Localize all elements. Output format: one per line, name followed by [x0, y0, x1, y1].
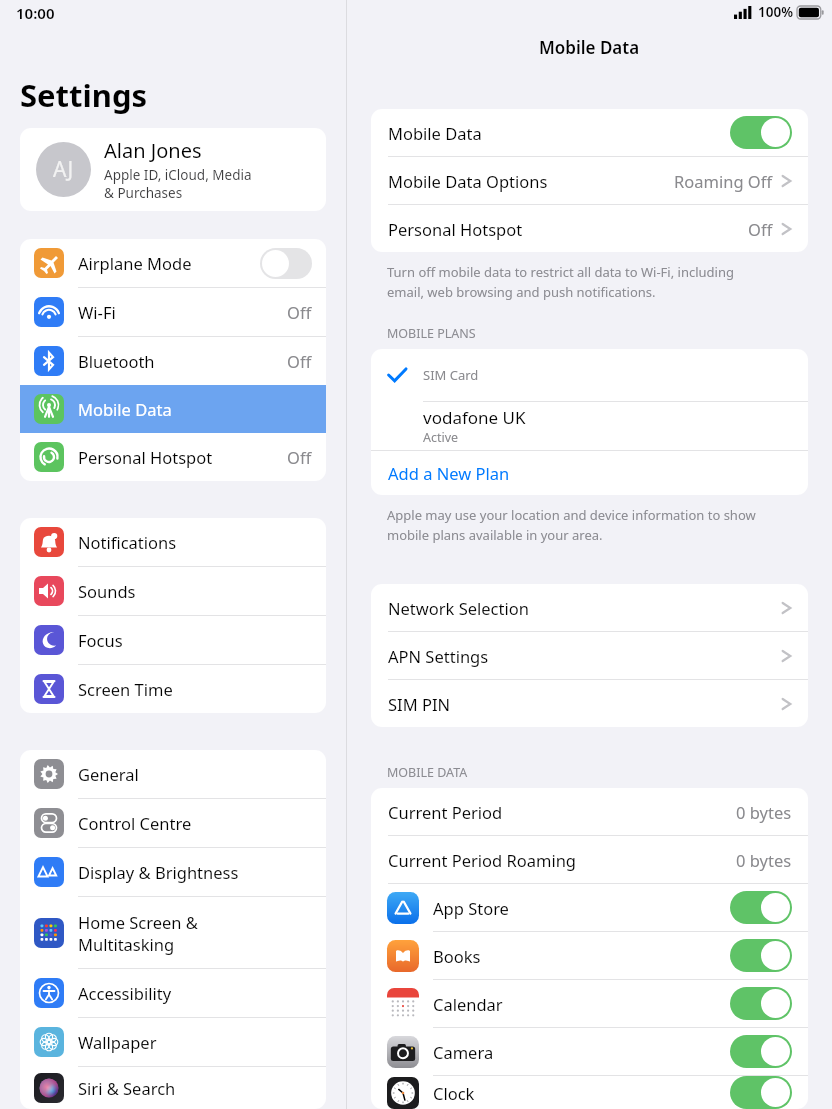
staticText: Apple may use your location and device i… [387, 506, 756, 524]
staticText: 0 bytes [736, 849, 792, 871]
staticText: Add a New Plan [388, 462, 510, 484]
button[interactable]: Camera [371, 1028, 808, 1075]
staticText: App Store [433, 897, 730, 919]
staticText: AJ [53, 155, 74, 184]
button[interactable]: Clock [371, 1076, 808, 1109]
staticText: Roaming Off [674, 170, 773, 192]
button[interactable]: Notifications [20, 518, 326, 566]
staticText: SIM Card [423, 366, 479, 384]
staticText: Off [287, 446, 312, 468]
button[interactable]: Mobile Data [371, 109, 808, 156]
staticText: Books [433, 945, 730, 967]
staticText: mobile plans available in your area. [387, 526, 603, 544]
button[interactable]: Sounds [20, 567, 326, 615]
button[interactable]: SIM PIN [371, 680, 808, 727]
staticText: 0 bytes [736, 801, 792, 823]
staticText: Off [287, 301, 312, 323]
button[interactable]: AJ [20, 128, 326, 211]
staticText: Multitasking [78, 933, 175, 955]
button[interactable]: Airplane Mode [20, 239, 326, 287]
button[interactable]: Home Screen & [20, 897, 326, 968]
staticText: MOBILE PLANS [387, 325, 476, 342]
staticText: Turn off mobile data to restrict all dat… [387, 263, 734, 281]
button[interactable]: Accessibility [20, 969, 326, 1017]
button[interactable]: Screen Time [20, 665, 326, 713]
staticText: Home Screen & [78, 911, 198, 933]
button[interactable]: General [20, 750, 326, 798]
staticText: Wi-Fi [78, 301, 116, 323]
staticText: Alan Jones [104, 137, 202, 164]
staticText: SIM PIN [388, 693, 781, 715]
staticText: Bluetooth [78, 350, 155, 372]
staticText: Control Centre [78, 812, 192, 834]
button[interactable]: Calendar [371, 980, 808, 1027]
button[interactable]: Current Period Roaming [371, 836, 808, 883]
staticText: Display & Brightness [78, 861, 239, 883]
button[interactable]: Focus [20, 616, 326, 664]
button[interactable] [730, 116, 792, 149]
staticText: 10:00 [16, 3, 55, 23]
staticText: Settings [20, 74, 148, 116]
staticText: email, web browsing and push notificatio… [387, 283, 656, 301]
staticText: Screen Time [78, 678, 173, 700]
staticText: Calendar [433, 993, 730, 1015]
button[interactable] [730, 987, 792, 1020]
staticText: Mobile Data [539, 36, 640, 59]
staticText: Current Period Roaming [388, 849, 736, 871]
button[interactable]: Wallpaper [20, 1018, 326, 1066]
staticText: Current Period [388, 801, 736, 823]
staticText: Personal Hotspot [78, 446, 213, 468]
button[interactable]: Wi-Fi [20, 288, 326, 336]
staticText: Camera [433, 1041, 730, 1063]
staticText: MOBILE DATA [387, 764, 468, 781]
staticText: Airplane Mode [78, 252, 192, 274]
button[interactable]: App Store [371, 884, 808, 931]
staticText: Off [287, 350, 312, 372]
button[interactable]: Display & Brightness [20, 848, 326, 896]
button[interactable]: Network Selection [371, 584, 808, 631]
button[interactable]: Personal Hotspot [20, 433, 326, 481]
button[interactable] [730, 1035, 792, 1068]
button[interactable]: Bluetooth [20, 337, 326, 385]
staticText: General [78, 763, 139, 785]
staticText: APN Settings [388, 645, 781, 667]
staticText: Sounds [78, 580, 136, 602]
button[interactable]: APN Settings [371, 632, 808, 679]
button[interactable]: Current Period [371, 788, 808, 835]
staticText: Mobile Data [388, 122, 730, 144]
button[interactable] [730, 939, 792, 972]
staticText: Mobile Data Options [388, 170, 674, 192]
button[interactable] [730, 891, 792, 924]
staticText: Notifications [78, 531, 177, 553]
staticText: Apple ID, iCloud, Media [104, 166, 252, 184]
staticText: Off [748, 218, 773, 240]
button[interactable]: Control Centre [20, 799, 326, 847]
button[interactable]: SIM Card [371, 349, 808, 401]
staticText: & Purchases [104, 184, 183, 202]
staticText: Wallpaper [78, 1031, 157, 1053]
button[interactable]: Add a New Plan [371, 451, 808, 495]
staticText: Clock [433, 1082, 730, 1104]
button[interactable] [260, 248, 312, 279]
staticText: 100% [758, 3, 793, 21]
staticText: Personal Hotspot [388, 218, 748, 240]
staticText: Siri & Search [78, 1077, 176, 1099]
button[interactable]: Books [371, 932, 808, 979]
button[interactable]: Siri & Search [20, 1067, 326, 1109]
button[interactable]: vodafone UK [371, 402, 808, 450]
button[interactable] [730, 1076, 792, 1109]
staticText: Accessibility [78, 982, 172, 1004]
staticText: Active [423, 429, 459, 446]
staticText: Focus [78, 629, 123, 651]
staticText: Mobile Data [78, 398, 172, 420]
button[interactable]: Personal Hotspot [371, 205, 808, 252]
staticText: Network Selection [388, 597, 781, 619]
button[interactable]: Mobile Data [20, 385, 326, 433]
staticText: vodafone UK [423, 406, 526, 429]
button[interactable]: Mobile Data Options [371, 157, 808, 204]
